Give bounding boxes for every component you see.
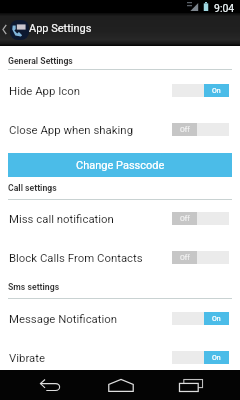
staticText: App Settings — [29, 22, 92, 35]
staticText: Off — [180, 215, 190, 223]
staticText: Sms settings — [8, 282, 60, 292]
staticText: Hide App Icon — [9, 84, 81, 97]
button[interactable]: Vibrate — [0, 344, 240, 370]
staticText: Vibrate — [9, 351, 46, 364]
staticText: Close App when shaking — [9, 123, 134, 136]
button[interactable]: Home — [97, 370, 145, 400]
staticText: Off — [180, 126, 190, 134]
button[interactable]: Off — [172, 123, 229, 136]
button[interactable]: Change Passcode — [8, 153, 232, 177]
staticText: Change Passcode — [76, 159, 165, 172]
staticText: On — [212, 315, 221, 323]
button[interactable]: Off — [172, 212, 229, 225]
button[interactable]: Message Notification — [0, 305, 240, 331]
button[interactable]: Hide App Icon — [0, 77, 240, 103]
staticText: 9:04 — [214, 2, 235, 14]
button[interactable]: Back — [26, 370, 74, 400]
button[interactable]: Block Calls From Contacts — [0, 244, 240, 270]
staticText: Off — [180, 254, 190, 262]
button[interactable]: Recent apps — [167, 370, 215, 400]
staticText: Block Calls From Contacts — [9, 251, 143, 264]
staticText: General Settings — [8, 56, 73, 66]
button[interactable]: On — [172, 312, 229, 325]
button[interactable]: Navigate up — [2, 24, 7, 35]
button[interactable]: On — [172, 351, 229, 364]
button[interactable]: Close App when shaking — [0, 116, 240, 142]
staticText: On — [212, 354, 221, 362]
button[interactable]: Off — [172, 251, 229, 264]
staticText: Message Notification — [9, 312, 118, 325]
staticText: Call settings — [8, 183, 57, 193]
button[interactable]: On — [172, 84, 229, 97]
staticText: On — [212, 87, 221, 95]
staticText: Miss call notification — [9, 212, 114, 225]
button[interactable]: Miss call notification — [0, 205, 240, 231]
